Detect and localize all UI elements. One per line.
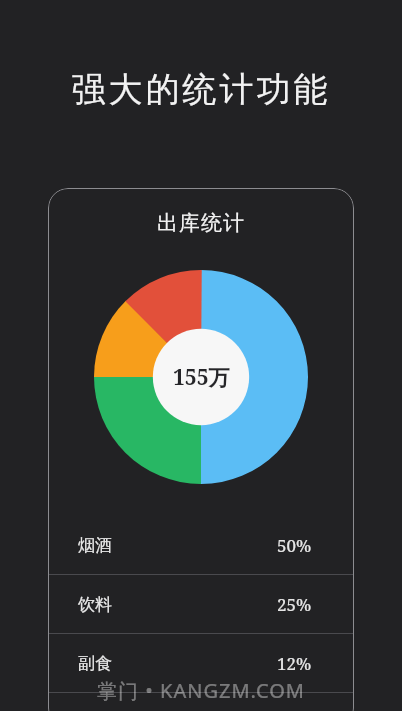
button[interactable]: 副食	[48, 634, 354, 692]
staticText: 烟酒	[78, 535, 112, 556]
staticText: 掌门 • KANGZM.COM	[0, 677, 402, 704]
staticText: 强大的统计功能	[0, 68, 402, 111]
staticText: 25%	[277, 593, 312, 616]
staticText: 50%	[277, 534, 312, 557]
staticText: 12%	[277, 652, 312, 675]
staticText: 155万	[173, 363, 230, 392]
staticText: 饮料	[78, 594, 112, 615]
staticText: 出库统计	[48, 210, 354, 236]
button[interactable]: 烟酒	[48, 516, 354, 574]
button[interactable]: 饮料	[48, 575, 354, 633]
staticText: 副食	[78, 653, 112, 674]
